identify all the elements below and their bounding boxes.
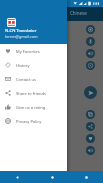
staticText: lorem@gmail.com xyxy=(5,34,38,39)
staticText: N-CN Translator xyxy=(5,28,37,34)
button[interactable]: Recents xyxy=(69,171,103,183)
button[interactable]: Contact us xyxy=(0,72,67,86)
button[interactable]: Clear xyxy=(86,61,95,70)
button[interactable]: Give us a rating xyxy=(0,100,67,114)
button[interactable]: Share xyxy=(86,122,95,131)
button[interactable]: Speak xyxy=(86,49,95,58)
staticText: History xyxy=(16,63,30,68)
button[interactable]: Stop xyxy=(86,25,95,34)
button[interactable]: Microphone xyxy=(86,37,95,46)
staticText: Give us a rating xyxy=(16,105,46,110)
button[interactable]: My Favorites xyxy=(0,44,67,58)
staticText: Share to friends xyxy=(16,91,46,96)
button[interactable]: Listen xyxy=(86,146,95,155)
button[interactable]: Send xyxy=(84,86,97,99)
button[interactable]: Share to friends xyxy=(0,86,67,100)
button[interactable]: Home xyxy=(35,171,69,183)
staticText: Privacy Policy xyxy=(16,119,42,124)
button[interactable]: Privacy Policy xyxy=(0,114,67,128)
staticText: Contact us xyxy=(16,77,36,82)
staticText: My Favorites xyxy=(16,49,40,54)
staticText: Chinese xyxy=(70,10,87,16)
button[interactable]: History xyxy=(0,58,67,72)
button[interactable]: Back xyxy=(0,171,35,183)
button[interactable]: Copy xyxy=(86,110,95,119)
button[interactable]: Favorite xyxy=(86,134,95,143)
